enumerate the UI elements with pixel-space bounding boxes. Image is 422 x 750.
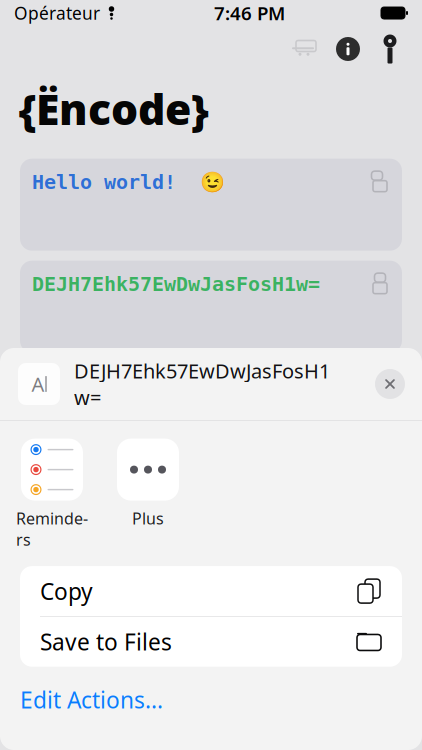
button[interactable]: Copy	[20, 566, 402, 616]
staticText: Hello world! 😉	[32, 171, 225, 194]
button[interactable]: Store	[282, 31, 326, 67]
staticText: A	[31, 371, 44, 397]
staticText: Save to Files	[40, 627, 172, 657]
button[interactable]: Save to Files	[20, 617, 402, 667]
button[interactable]: Plus	[110, 439, 186, 529]
staticText: {Ëncode}	[18, 80, 209, 137]
button[interactable]: Reminders	[14, 439, 90, 550]
staticText: Edit Actions...	[20, 685, 163, 715]
staticText: Opérateur	[14, 1, 100, 24]
button[interactable]: Close	[368, 362, 412, 406]
staticText: Copy	[40, 576, 93, 606]
staticText: 7:46 PM	[214, 1, 285, 25]
staticText: Reminders	[16, 508, 88, 550]
button[interactable]: Edit Actions...	[0, 673, 183, 727]
staticText: Plus	[132, 508, 164, 529]
staticText: DEJH7Ehk57EwDwJasFosH1w=	[32, 273, 320, 295]
button[interactable]: Key	[370, 31, 410, 67]
staticText: DEJH7Ehk57EwDwJasFosH1w=	[74, 357, 330, 410]
button[interactable]: Info	[326, 31, 370, 67]
